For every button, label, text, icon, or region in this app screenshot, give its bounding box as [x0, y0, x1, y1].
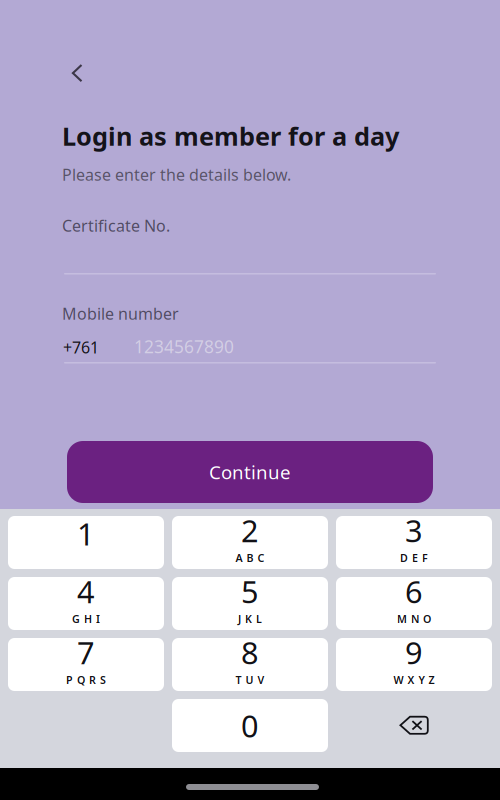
button[interactable]: 2 ABC	[172, 516, 328, 569]
button[interactable]: Delete	[336, 699, 492, 752]
staticText: 2	[241, 510, 259, 551]
button[interactable]: 4 GHI	[8, 577, 164, 630]
staticText: 4	[77, 571, 95, 612]
staticText: 6	[405, 571, 423, 612]
staticText: 7	[77, 632, 95, 673]
staticText: 1234567890	[134, 335, 234, 358]
staticText: 8	[241, 632, 259, 673]
staticText: Login as member for a day	[62, 119, 399, 153]
staticText: P Q R S	[66, 673, 106, 687]
staticText: A B C	[235, 551, 264, 565]
staticText: M N O	[397, 612, 431, 626]
button[interactable]: 9 WXYZ	[336, 638, 492, 691]
button[interactable]: 6 MNO	[336, 577, 492, 630]
staticText: 9	[405, 632, 423, 673]
button[interactable]: 5 JKL	[172, 577, 328, 630]
staticText: Please enter the details below.	[62, 164, 291, 185]
staticText: 0	[241, 705, 259, 746]
staticText: J K L	[238, 612, 262, 626]
staticText: 5	[241, 571, 259, 612]
button[interactable]: Continue	[67, 441, 433, 503]
staticText: Certificate No.	[62, 215, 170, 236]
button[interactable]: 0	[172, 699, 328, 752]
button[interactable]: 8 TUV	[172, 638, 328, 691]
staticText: +761	[63, 337, 99, 358]
staticText: D E F	[400, 551, 428, 565]
button[interactable]: 1	[8, 516, 164, 569]
staticText: G H I	[72, 612, 100, 626]
staticText: 3	[405, 510, 423, 551]
staticText: 1	[77, 513, 95, 554]
button[interactable]: 7 PQRS	[8, 638, 164, 691]
button[interactable]: Back	[52, 50, 102, 96]
staticText: W X Y Z	[393, 673, 434, 687]
staticText: T U V	[235, 673, 264, 687]
staticText: Continue	[209, 460, 291, 484]
staticText: Mobile number	[62, 303, 179, 324]
button[interactable]: 3 DEF	[336, 516, 492, 569]
